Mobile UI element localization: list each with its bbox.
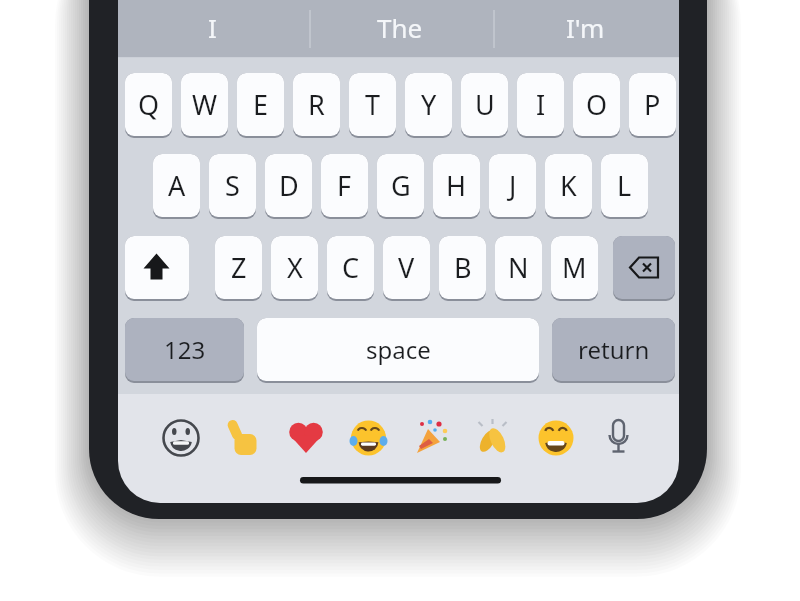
staticText: L: [617, 167, 632, 204]
staticText: Q: [138, 86, 160, 123]
staticText: P: [644, 86, 661, 123]
staticText: N: [508, 249, 529, 286]
button[interactable]: A: [153, 154, 200, 219]
staticText: B: [454, 249, 472, 286]
staticText: M: [562, 249, 587, 286]
staticText: The: [377, 10, 423, 45]
staticText: I: [208, 10, 217, 45]
button[interactable]: The: [340, 7, 460, 47]
button[interactable]: J: [489, 154, 536, 219]
staticText: A: [168, 167, 186, 204]
button[interactable]: 123: [125, 318, 244, 383]
staticText: Z: [231, 249, 247, 286]
staticText: return: [578, 333, 650, 366]
button[interactable]: S: [209, 154, 256, 219]
staticText: U: [475, 86, 495, 123]
button[interactable]: B: [439, 236, 486, 301]
button[interactable]: R: [293, 73, 340, 138]
button[interactable]: Z: [215, 236, 262, 301]
button[interactable]: return: [552, 318, 675, 383]
button[interactable]: K: [545, 154, 592, 219]
button[interactable]: [125, 236, 189, 301]
button[interactable]: L: [601, 154, 648, 219]
staticText: V: [398, 249, 415, 286]
staticText: W: [192, 86, 218, 123]
staticText: X: [287, 249, 303, 286]
button[interactable]: V: [383, 236, 430, 301]
staticText: R: [308, 86, 325, 123]
staticText: J: [509, 167, 517, 204]
staticText: I'm: [566, 10, 605, 45]
button[interactable]: U: [461, 73, 508, 138]
button[interactable]: O: [573, 73, 620, 138]
staticText: H: [446, 167, 467, 204]
button[interactable]: I: [517, 73, 564, 138]
button[interactable]: Q: [125, 73, 172, 138]
staticText: T: [365, 86, 381, 123]
button[interactable]: P: [629, 73, 676, 138]
button[interactable]: G: [377, 154, 424, 219]
button[interactable]: M: [551, 236, 598, 301]
button[interactable]: [613, 236, 675, 301]
button[interactable]: F: [321, 154, 368, 219]
button[interactable]: I'm: [525, 7, 645, 47]
button[interactable]: T: [349, 73, 396, 138]
button[interactable]: C: [327, 236, 374, 301]
staticText: I: [536, 86, 546, 123]
button[interactable]: space: [257, 318, 539, 383]
button[interactable]: N: [495, 236, 542, 301]
button[interactable]: Y: [405, 73, 452, 138]
staticText: S: [225, 167, 240, 204]
staticText: 123: [164, 333, 206, 366]
button[interactable]: H: [433, 154, 480, 219]
staticText: E: [253, 86, 269, 123]
staticText: space: [366, 333, 431, 366]
button[interactable]: D: [265, 154, 312, 219]
button[interactable]: E: [237, 73, 284, 138]
staticText: K: [560, 167, 577, 204]
button[interactable]: X: [271, 236, 318, 301]
staticText: O: [586, 86, 608, 123]
button[interactable]: I: [152, 7, 272, 47]
staticText: G: [391, 167, 411, 204]
staticText: D: [279, 167, 299, 204]
staticText: C: [342, 249, 360, 286]
button[interactable]: W: [181, 73, 228, 138]
staticText: Y: [421, 86, 437, 123]
staticText: F: [337, 167, 352, 204]
